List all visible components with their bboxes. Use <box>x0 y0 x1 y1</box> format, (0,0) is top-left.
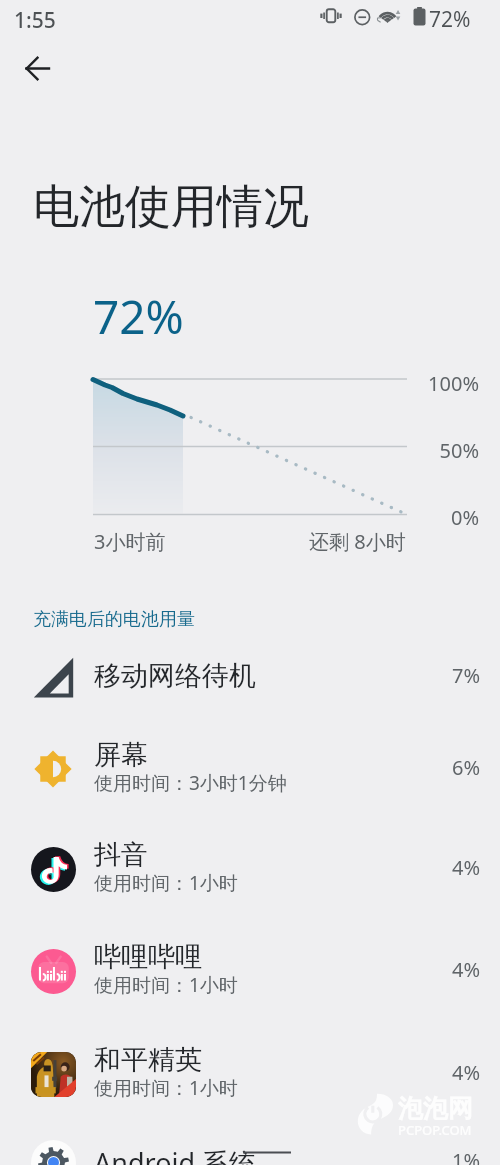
staticText: Android 系统 <box>94 1144 257 1165</box>
staticText: 充满电后的电池用量 <box>33 608 195 631</box>
staticText: 哔哩哔哩 <box>94 940 202 974</box>
staticText: 50% <box>439 437 479 464</box>
staticText: 3小时前 <box>94 528 166 555</box>
staticText: 72% <box>429 5 471 34</box>
staticText: 抖音 <box>94 838 148 872</box>
button[interactable]: Back <box>13 44 61 92</box>
staticText: 100% <box>428 370 479 397</box>
staticText: 电池使用情况 <box>33 178 309 236</box>
staticText: 使用时间：3小时1分钟 <box>94 770 287 796</box>
button[interactable]: 哔哩哔哩 <box>0 921 500 1021</box>
staticText: 移动网络待机 <box>94 659 256 693</box>
staticText: 使用时间：1小时 <box>94 972 238 998</box>
staticText: 0% <box>450 504 479 531</box>
staticText: 4% <box>451 854 480 881</box>
staticText: 6% <box>451 754 480 781</box>
staticText: 4% <box>451 956 480 983</box>
staticText: 泡泡网 <box>398 1093 473 1124</box>
staticText: PCPOP.COM <box>398 1121 472 1139</box>
button[interactable]: 和平精英 <box>0 1024 500 1124</box>
staticText: 72% <box>93 285 184 348</box>
staticText: 7% <box>451 662 480 689</box>
staticText: 还剩 8小时 <box>309 528 406 555</box>
button[interactable]: Android 系统 <box>0 1112 500 1165</box>
staticText: 1:55 <box>14 6 56 35</box>
button[interactable]: 抖音 <box>0 819 500 919</box>
button[interactable]: 屏幕 <box>0 719 500 819</box>
staticText: 屏幕 <box>94 738 148 772</box>
staticText: 使用时间：1小时 <box>94 1075 238 1101</box>
staticText: 和平精英 <box>94 1043 202 1077</box>
staticText: 使用时间：1小时 <box>94 870 238 896</box>
staticText: 1% <box>451 1147 480 1165</box>
staticText: 4% <box>451 1059 480 1086</box>
button[interactable]: 移动网络待机 <box>0 627 500 727</box>
